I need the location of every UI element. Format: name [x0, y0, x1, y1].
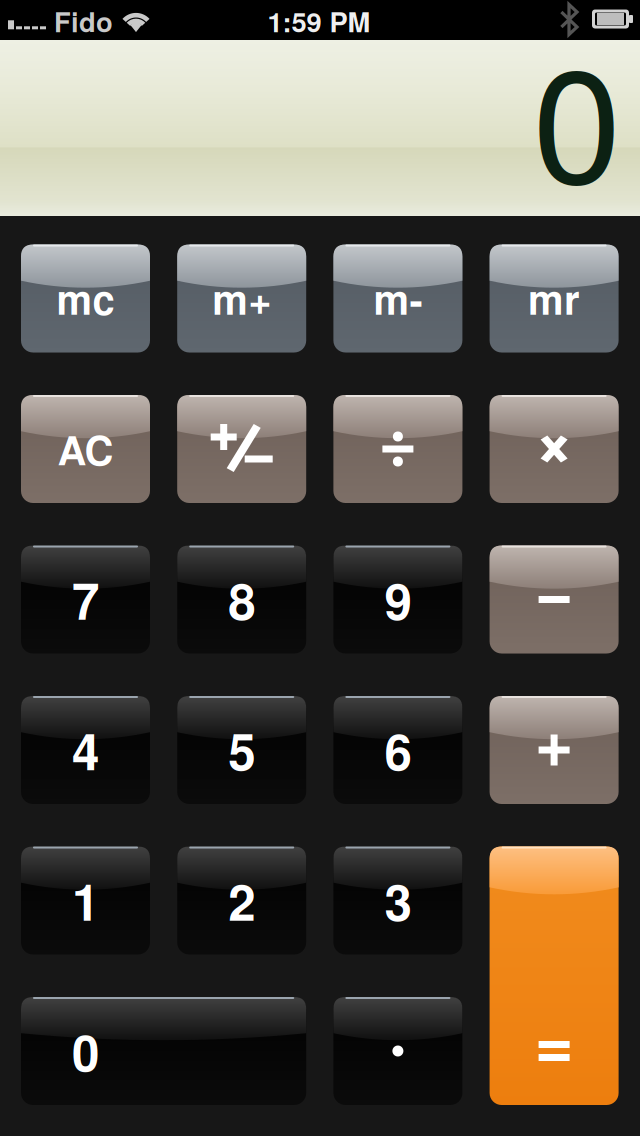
button[interactable]: 3: [333, 846, 462, 954]
button[interactable]: AC: [21, 395, 150, 503]
staticText: m+: [212, 270, 271, 327]
staticText: m-: [373, 270, 422, 327]
button[interactable]: [333, 997, 462, 1105]
button[interactable]: 6: [333, 696, 462, 804]
button[interactable]: [490, 395, 619, 503]
staticText: 3: [384, 865, 411, 936]
button[interactable]: 7: [21, 545, 150, 653]
button[interactable]: [490, 846, 619, 1105]
staticText: 7: [72, 564, 99, 635]
button[interactable]: m-: [333, 244, 462, 352]
button[interactable]: 8: [177, 545, 306, 653]
staticText: 6: [384, 715, 411, 785]
button[interactable]: [490, 545, 619, 653]
button[interactable]: [333, 395, 462, 503]
button[interactable]: 0: [21, 997, 306, 1105]
button[interactable]: 1: [21, 846, 150, 954]
button[interactable]: m+: [177, 244, 306, 352]
staticText: AC: [57, 420, 113, 478]
staticText: 1:59 PM: [267, 1, 370, 40]
staticText: 2: [228, 865, 255, 936]
staticText: mc: [56, 270, 114, 327]
staticText: 4: [72, 715, 99, 785]
button[interactable]: 9: [333, 545, 462, 653]
button[interactable]: 5: [177, 696, 306, 804]
staticText: 1: [72, 865, 99, 936]
button[interactable]: mc: [21, 244, 150, 352]
staticText: 9: [384, 564, 411, 635]
button[interactable]: mr: [490, 244, 619, 352]
staticText: 8: [228, 564, 255, 635]
staticText: mr: [528, 270, 580, 327]
staticText: 5: [228, 715, 255, 785]
staticText: Fido: [54, 1, 113, 40]
button[interactable]: [177, 395, 306, 503]
button[interactable]: 2: [177, 846, 306, 954]
staticText: 0: [72, 1016, 99, 1086]
staticText: 0: [532, 0, 621, 229]
button[interactable]: [490, 696, 619, 804]
button[interactable]: 4: [21, 696, 150, 804]
